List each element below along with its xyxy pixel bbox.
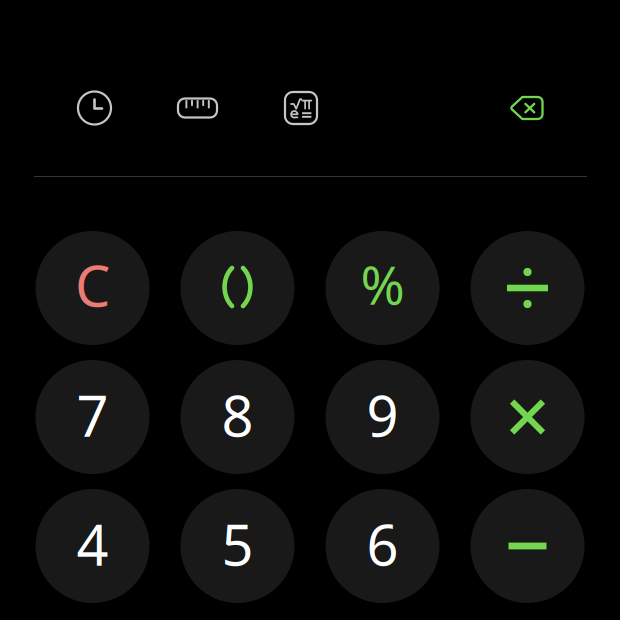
button[interactable]: Parentheses xyxy=(180,231,294,345)
button[interactable]: 6 xyxy=(325,489,439,603)
button[interactable]: 4 xyxy=(35,489,149,603)
button[interactable]: 7 xyxy=(35,360,149,474)
button[interactable]: 9 xyxy=(325,360,439,474)
button[interactable]: Clear xyxy=(35,231,149,345)
button[interactable]: 8 xyxy=(180,360,294,474)
button[interactable]: Multiply xyxy=(470,360,584,474)
button[interactable]: Percent xyxy=(325,231,439,345)
staticText: C xyxy=(75,248,110,322)
button[interactable]: Unit Conversion xyxy=(178,98,217,117)
button[interactable]: History xyxy=(78,91,111,124)
staticText: % xyxy=(360,249,404,319)
staticText: 9 xyxy=(366,378,398,452)
staticText: 8 xyxy=(221,378,253,452)
button[interactable]: Divide xyxy=(470,231,584,345)
staticText: 6 xyxy=(366,507,398,581)
button[interactable]: Scientific xyxy=(285,92,317,124)
staticText: 7 xyxy=(76,378,108,452)
staticText: 5 xyxy=(221,507,253,581)
button[interactable]: Minus xyxy=(470,489,584,603)
staticText: 4 xyxy=(76,507,108,581)
button[interactable]: 5 xyxy=(180,489,294,603)
button[interactable]: Delete xyxy=(509,95,544,120)
